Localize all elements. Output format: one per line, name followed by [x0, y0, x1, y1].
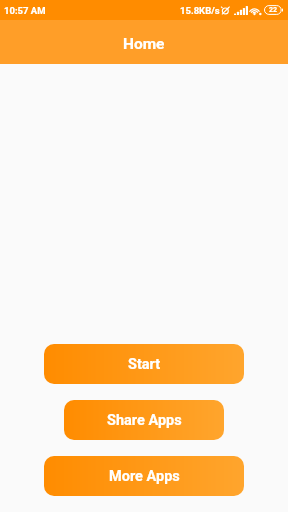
other: Battery 22 percent — [264, 5, 283, 15]
staticText: Start — [128, 356, 161, 373]
staticText: Home — [123, 35, 165, 53]
button[interactable]: Start — [44, 344, 244, 384]
other: Alarm off — [221, 6, 230, 15]
staticText: 15.8KB/s — [180, 5, 220, 16]
staticText: 22 — [269, 6, 278, 14]
other: Mobile signal — [234, 6, 248, 15]
other: Wi-Fi — [249, 5, 262, 16]
staticText: Share Apps — [107, 412, 182, 429]
staticText: 10:57 AM — [4, 5, 46, 16]
staticText: More Apps — [109, 468, 180, 485]
button[interactable]: Share Apps — [64, 400, 224, 440]
button[interactable]: More Apps — [44, 456, 244, 496]
